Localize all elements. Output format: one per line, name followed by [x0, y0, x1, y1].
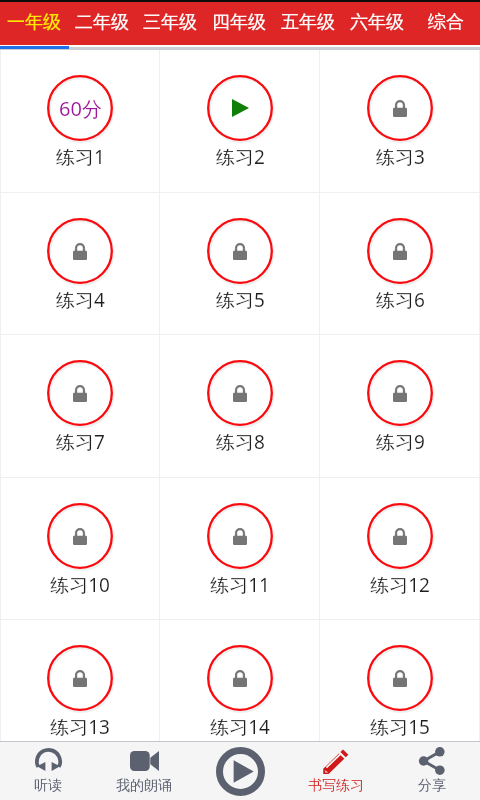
- staticText: 六年级: [350, 11, 404, 34]
- staticText: 练习6: [376, 287, 425, 313]
- button[interactable]: Play: [192, 742, 288, 800]
- staticText: 练习2: [216, 144, 265, 170]
- staticText: 练习1: [56, 144, 105, 170]
- staticText: 练习13: [50, 714, 110, 740]
- staticText: 练习7: [56, 429, 105, 455]
- button[interactable]: 练习6: [320, 193, 480, 334]
- button[interactable]: 练习4: [0, 193, 160, 334]
- staticText: 练习8: [216, 429, 265, 455]
- button[interactable]: 练习7: [0, 335, 160, 477]
- staticText: 60分: [59, 95, 102, 122]
- button[interactable]: 二年级: [68, 0, 136, 45]
- button[interactable]: 练习5: [160, 193, 320, 334]
- button[interactable]: 六年级: [342, 0, 411, 45]
- staticText: 五年级: [281, 11, 335, 34]
- button[interactable]: 五年级: [273, 0, 342, 45]
- staticText: 练习11: [210, 572, 270, 598]
- staticText: 分享: [418, 777, 446, 795]
- button[interactable]: 书写练习: [288, 742, 384, 800]
- staticText: 练习4: [56, 287, 105, 313]
- staticText: 听读: [34, 777, 62, 795]
- staticText: 四年级: [212, 11, 266, 34]
- staticText: 练习3: [376, 144, 425, 170]
- staticText: 我的朗诵: [116, 777, 172, 795]
- staticText: 练习15: [370, 714, 430, 740]
- staticText: 三年级: [143, 11, 197, 34]
- button[interactable]: 练习13: [0, 620, 160, 741]
- staticText: 练习5: [216, 287, 265, 313]
- button[interactable]: 三年级: [136, 0, 204, 45]
- staticText: 一年级: [7, 11, 61, 34]
- staticText: 练习14: [210, 714, 270, 740]
- button[interactable]: 练习11: [160, 478, 320, 619]
- staticText: 书写练习: [308, 777, 364, 795]
- button[interactable]: 我的朗诵: [96, 742, 192, 800]
- button[interactable]: 练习8: [160, 335, 320, 477]
- staticText: 综合: [428, 11, 464, 34]
- button[interactable]: 分享: [384, 742, 480, 800]
- staticText: 练习9: [376, 429, 425, 455]
- button[interactable]: 四年级: [204, 0, 273, 45]
- button[interactable]: 练习10: [0, 478, 160, 619]
- button[interactable]: 一年级: [0, 0, 68, 45]
- button[interactable]: 听读: [0, 742, 96, 800]
- staticText: 二年级: [75, 11, 129, 34]
- button[interactable]: 练习3: [320, 50, 480, 192]
- staticText: 练习10: [50, 572, 110, 598]
- button[interactable]: 练习9: [320, 335, 480, 477]
- button[interactable]: 练习14: [160, 620, 320, 741]
- button[interactable]: 60分: [0, 50, 160, 192]
- button[interactable]: 综合: [411, 0, 480, 45]
- button[interactable]: 练习15: [320, 620, 480, 741]
- staticText: 练习12: [370, 572, 430, 598]
- button[interactable]: 练习12: [320, 478, 480, 619]
- button[interactable]: 练习2: [160, 50, 320, 192]
